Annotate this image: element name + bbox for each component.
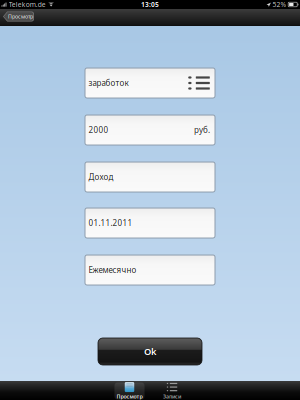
staticText: Просмотр (8, 13, 33, 20)
button[interactable]: заработок (85, 68, 215, 98)
staticText: 01.11.2011 (88, 218, 132, 228)
button[interactable]: Просмотр (3, 11, 34, 21)
button[interactable]: 2000 (85, 115, 215, 145)
staticText: Telekom.de (9, 0, 46, 9)
staticText: Ежемесячно (88, 265, 136, 275)
staticText: Доход (88, 172, 113, 182)
button[interactable]: Доход (85, 162, 215, 192)
staticText: руб. (194, 125, 210, 135)
button[interactable]: Ежемесячно (85, 255, 215, 285)
button[interactable]: Просмотр (114, 383, 144, 399)
staticText: заработок (88, 78, 128, 88)
staticText: Просмотр (116, 393, 142, 400)
button[interactable]: 01.11.2011 (85, 208, 215, 238)
staticText: 52% (273, 0, 287, 9)
staticText: Записи (163, 393, 181, 400)
staticText: Ok (144, 345, 156, 358)
staticText: 2000 (88, 125, 108, 135)
staticText: 13:05 (141, 0, 159, 9)
button[interactable]: Записи (157, 383, 187, 399)
button[interactable]: Ok (98, 338, 202, 365)
